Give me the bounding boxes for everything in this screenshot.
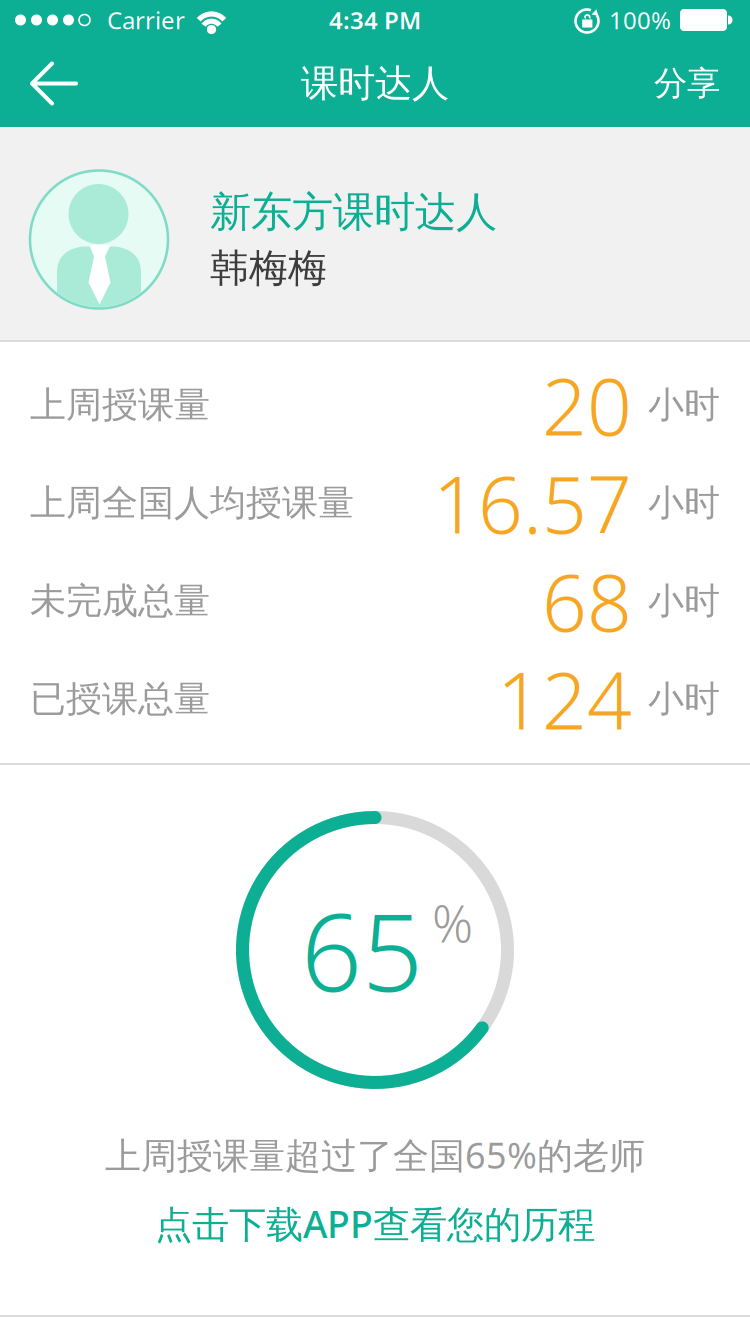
staticText: 100% [609, 4, 671, 36]
staticText: 4:34 PM [329, 4, 421, 36]
staticText: 小时 [648, 677, 720, 721]
staticText: 点击下载APP查看您的历程 [155, 1199, 595, 1248]
staticText: 未完成总量 [30, 579, 210, 623]
staticText: % [432, 889, 473, 956]
staticText: 20 [542, 353, 632, 457]
staticText: 124 [497, 647, 632, 751]
staticText: 上周授课量 [30, 383, 210, 427]
staticText: 小时 [648, 481, 720, 525]
staticText: 小时 [648, 383, 720, 427]
staticText: 68 [542, 549, 632, 653]
staticText: 韩梅梅 [210, 245, 327, 292]
button[interactable]: 点击下载APP查看您的历程 [155, 1179, 595, 1248]
staticText: 分享 [654, 63, 720, 104]
staticText: 上周授课量超过了全国65%的老师 [105, 1131, 645, 1179]
staticText: 上周全国人均授课量 [30, 481, 354, 525]
staticText: 新东方课时达人 [210, 187, 497, 238]
staticText: Carrier [107, 4, 185, 36]
button[interactable]: 分享 [654, 37, 750, 130]
staticText: 小时 [648, 579, 720, 623]
staticText: 16.57 [433, 451, 632, 555]
staticText: 课时达人 [301, 61, 449, 106]
staticText: 已授课总量 [30, 677, 210, 721]
button[interactable] [0, 40, 78, 126]
staticText: 65 [301, 879, 423, 1021]
